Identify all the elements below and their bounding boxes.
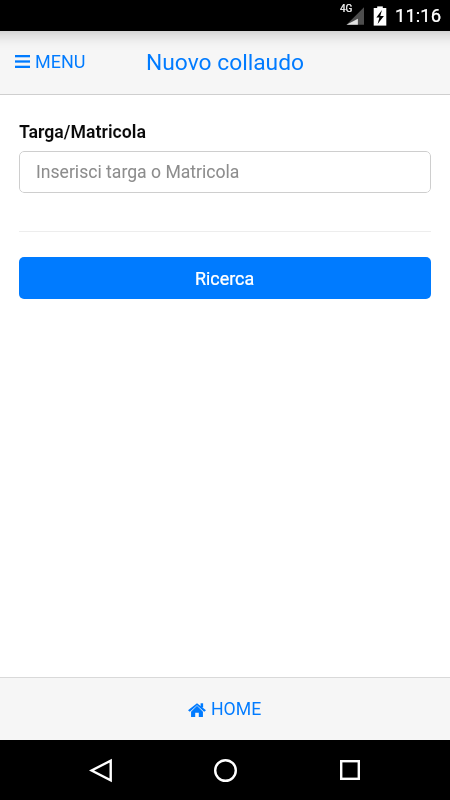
button[interactable]: Recents: [326, 746, 374, 794]
staticText: 4G: [340, 3, 353, 15]
staticText: HOME: [211, 699, 262, 720]
button[interactable]: HOME: [174, 691, 276, 728]
staticText: Targa/Matricola: [19, 122, 146, 143]
button[interactable]: MENU: [0, 43, 96, 80]
staticText: Ricerca: [195, 268, 255, 289]
button[interactable]: Ricerca: [19, 257, 431, 299]
staticText: MENU: [35, 51, 86, 72]
button[interactable]: Inserisci targa o Matricola: [19, 151, 431, 193]
button[interactable]: Home: [201, 746, 249, 794]
staticText: 11:16: [395, 5, 442, 27]
staticText: Nuovo collaudo: [146, 49, 305, 76]
button[interactable]: Back: [77, 746, 125, 794]
staticText: Inserisci targa o Matricola: [36, 162, 240, 183]
